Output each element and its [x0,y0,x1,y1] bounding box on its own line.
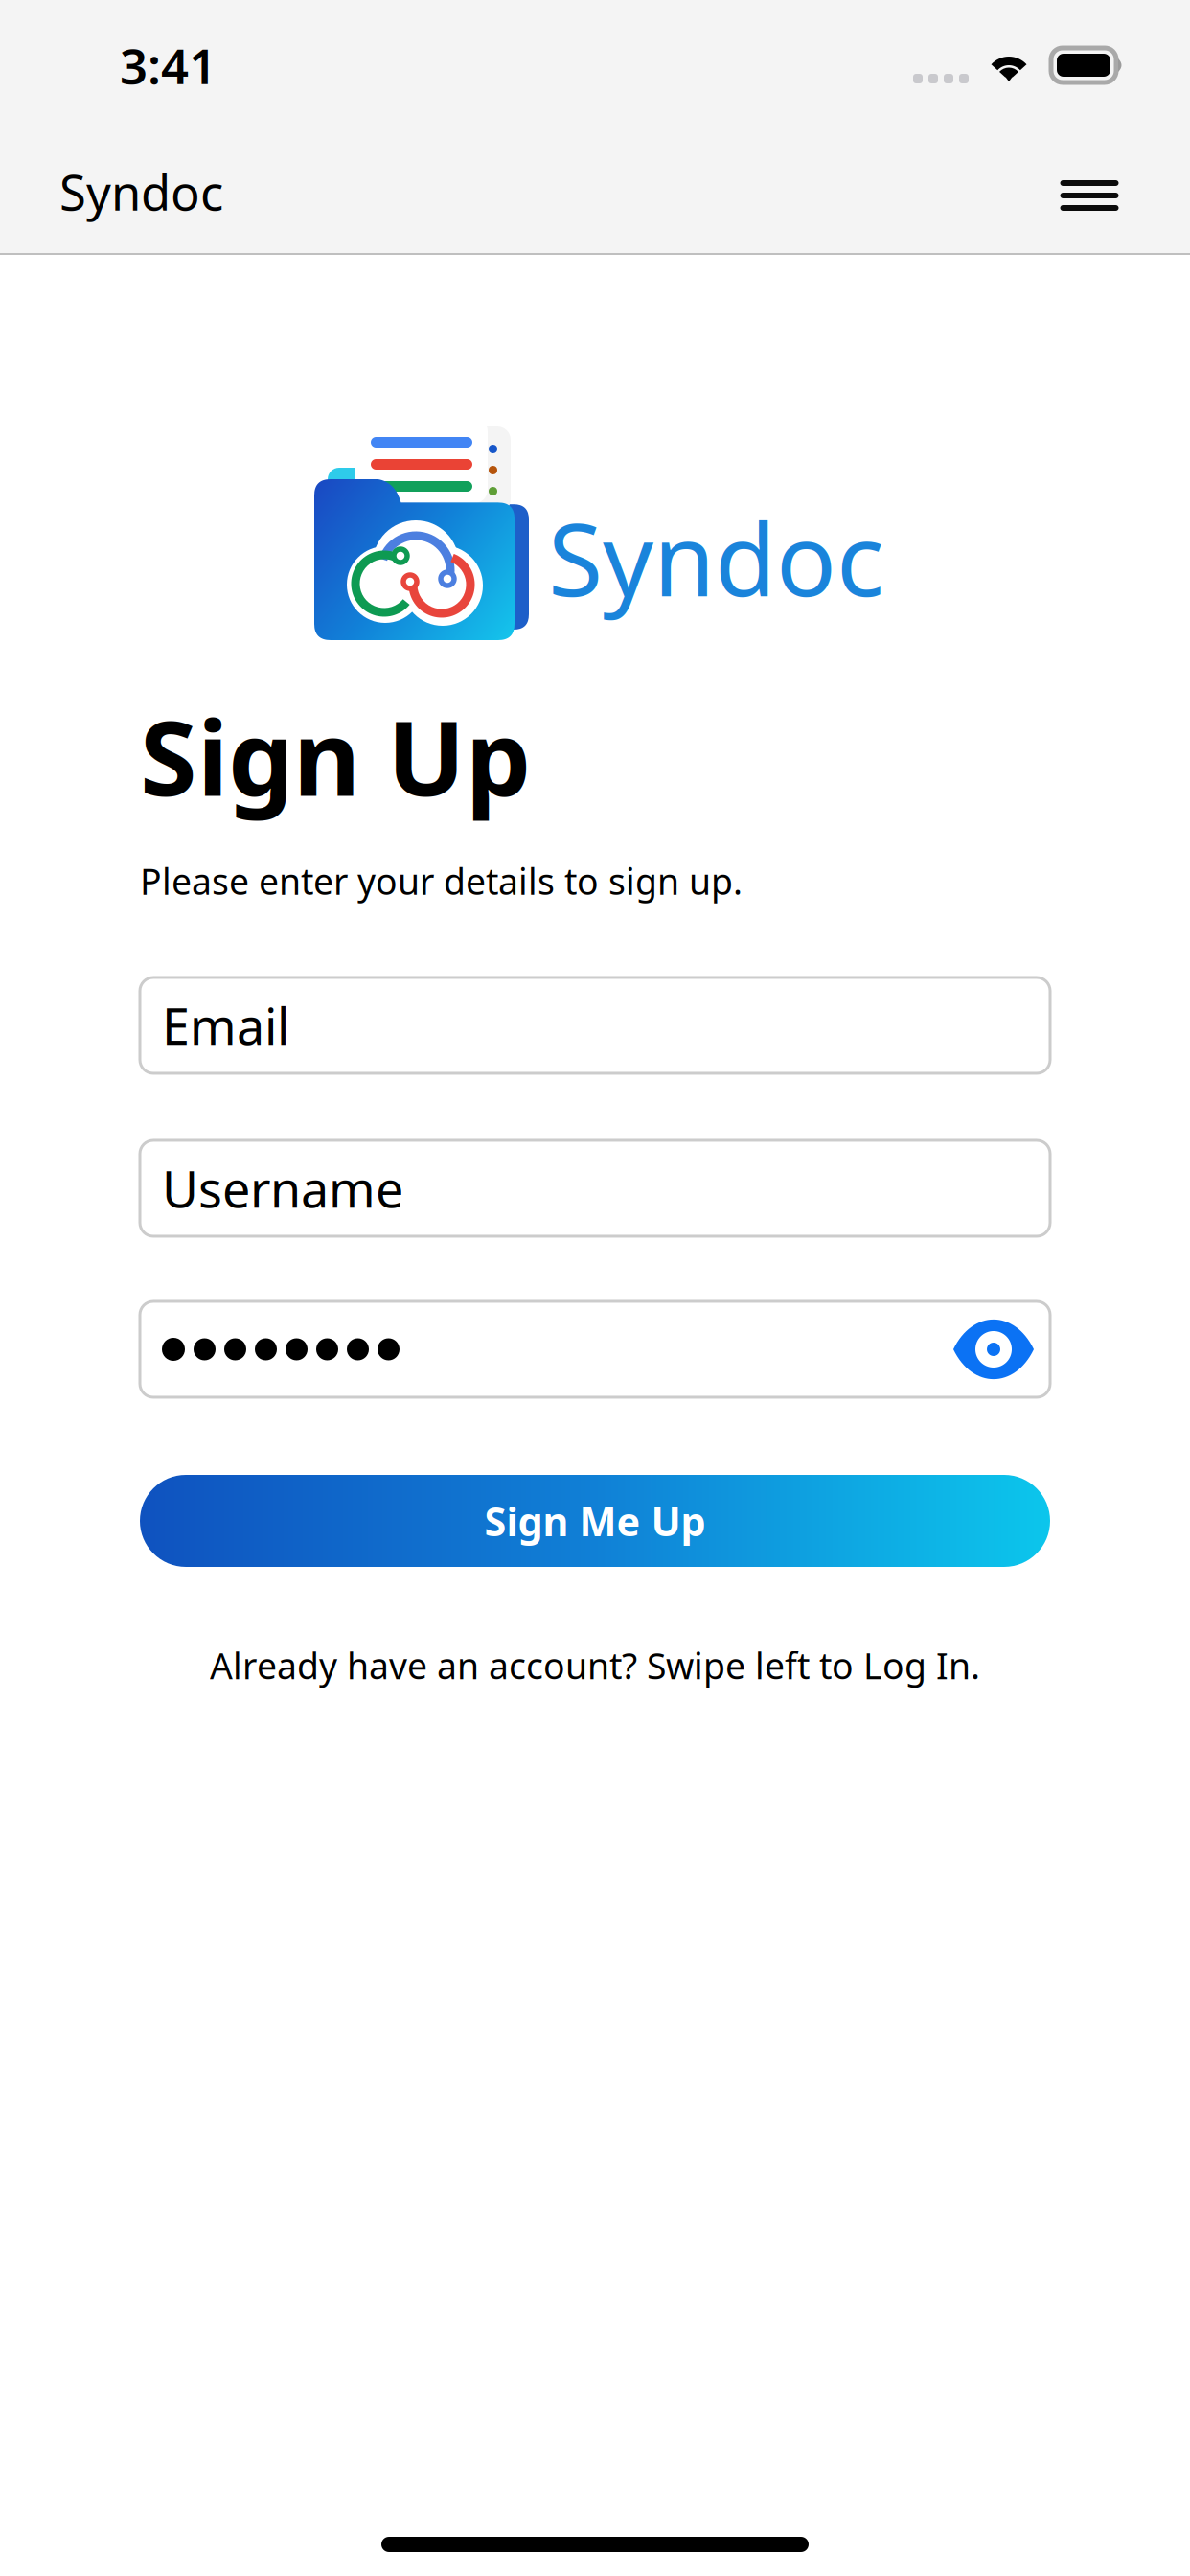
staticText: Email [162,992,289,1059]
staticText: Syndoc [59,159,223,224]
staticText: 3:41 [120,33,217,97]
staticText: Please enter your details to sign up. [140,857,743,905]
staticText: Username [162,1155,403,1221]
button[interactable]: Sign Me Up [140,1475,1050,1567]
staticText: Already have an account? Swipe left to L… [210,1642,980,1689]
staticText: Syndoc [548,492,884,624]
button[interactable]: Show password [951,1323,1036,1376]
staticText: Sign Up [140,687,531,825]
staticText: Sign Me Up [484,1495,706,1547]
button[interactable]: Menu [1037,136,1142,247]
